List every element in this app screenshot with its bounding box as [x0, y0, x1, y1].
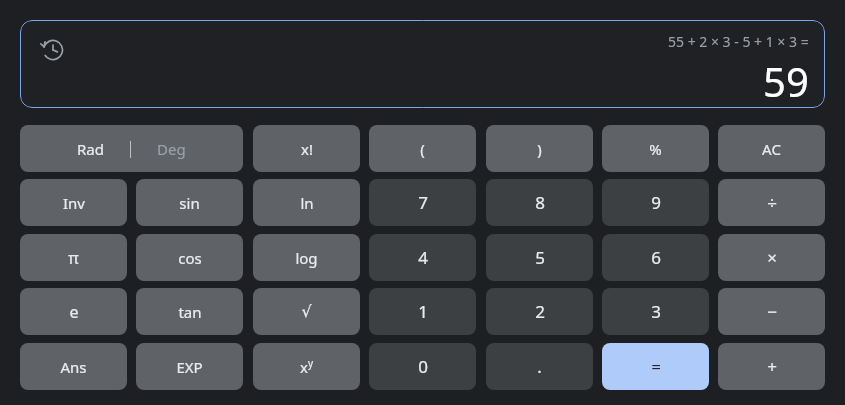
button[interactable]: log	[253, 234, 360, 281]
staticText: √	[301, 302, 312, 321]
staticText: x	[300, 357, 308, 377]
button[interactable]: 5	[486, 234, 593, 281]
button[interactable]: %	[602, 125, 709, 172]
staticText: 1	[418, 300, 428, 323]
button[interactable]: 1	[369, 288, 476, 335]
staticText: sin	[179, 193, 200, 213]
staticText: cos	[178, 248, 202, 268]
staticText: =	[651, 355, 661, 378]
staticText: 6	[651, 246, 661, 269]
button[interactable]: 6	[602, 234, 709, 281]
button[interactable]: +	[718, 343, 825, 390]
button[interactable]: ÷	[718, 179, 825, 226]
button[interactable]: ×	[718, 234, 825, 281]
staticText: y	[308, 356, 314, 370]
staticText: 59	[763, 54, 809, 108]
staticText: Deg	[157, 139, 186, 159]
button[interactable]: 7	[369, 179, 476, 226]
staticText: 2	[535, 300, 545, 323]
button[interactable]: x!	[253, 125, 360, 172]
staticText: ÷	[767, 191, 777, 214]
staticText: 4	[418, 246, 428, 269]
button[interactable]: Inv	[20, 179, 127, 226]
button[interactable]: tan	[136, 288, 243, 335]
button[interactable]: Ans	[20, 343, 127, 390]
staticText: AC	[762, 139, 781, 159]
button[interactable]: =	[602, 343, 709, 390]
button[interactable]: )	[486, 125, 593, 172]
button[interactable]: 4	[369, 234, 476, 281]
button[interactable]: √	[253, 288, 360, 335]
button[interactable]: cos	[136, 234, 243, 281]
button[interactable]: History	[37, 34, 69, 66]
button[interactable]: −	[718, 288, 825, 335]
staticText: (	[420, 139, 425, 159]
button[interactable]: 9	[602, 179, 709, 226]
staticText: +	[767, 355, 777, 378]
button[interactable]: π	[20, 234, 127, 281]
staticText: e	[69, 301, 79, 323]
staticText: ln	[300, 193, 314, 213]
button[interactable]: 0	[369, 343, 476, 390]
staticText: −	[767, 300, 777, 323]
button[interactable]: 2	[486, 288, 593, 335]
staticText: .	[537, 355, 542, 378]
button[interactable]: AC	[718, 125, 825, 172]
staticText: tan	[178, 302, 202, 322]
staticText: 9	[651, 191, 661, 214]
button[interactable]: e	[20, 288, 127, 335]
staticText: Rad	[77, 139, 104, 159]
staticText: EXP	[176, 357, 203, 377]
staticText: ×	[767, 246, 777, 269]
button[interactable]: 3	[602, 288, 709, 335]
staticText: π	[68, 247, 79, 269]
staticText: log	[295, 248, 318, 268]
staticText: 55 + 2 × 3 - 5 + 1 × 3 =	[668, 32, 809, 51]
staticText: 0	[418, 355, 428, 378]
button[interactable]: sin	[136, 179, 243, 226]
staticText: 8	[535, 191, 545, 214]
staticText: x!	[301, 139, 313, 159]
staticText: 7	[418, 191, 428, 214]
staticText: %	[649, 139, 662, 159]
button[interactable]: Rad	[20, 125, 243, 172]
staticText: Inv	[63, 193, 85, 213]
button[interactable]: ln	[253, 179, 360, 226]
staticText: 3	[651, 300, 661, 323]
button[interactable]: 8	[486, 179, 593, 226]
button[interactable]: x	[253, 343, 360, 390]
button[interactable]: EXP	[136, 343, 243, 390]
staticText: 5	[535, 246, 545, 269]
staticText: )	[537, 139, 542, 159]
staticText: Ans	[60, 357, 87, 377]
button[interactable]: (	[369, 125, 476, 172]
button[interactable]: .	[486, 343, 593, 390]
